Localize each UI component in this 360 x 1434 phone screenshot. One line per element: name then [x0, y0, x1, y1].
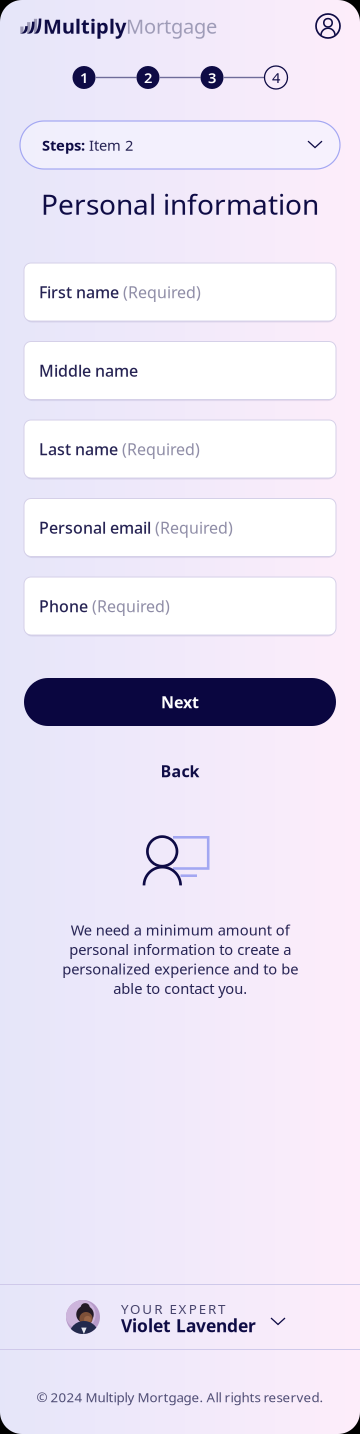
staticText: (Required) — [151, 517, 233, 538]
staticText: Violet Lavender — [121, 1314, 256, 1337]
staticText: Personal email — [39, 517, 151, 538]
staticText: (Required) — [118, 438, 200, 460]
staticText: Middle name — [39, 360, 138, 381]
button[interactable]: Last name — [24, 420, 336, 478]
staticText: Steps: — [42, 135, 85, 155]
button[interactable]: Personal email — [24, 498, 336, 556]
button[interactable]: Steps: — [20, 121, 340, 169]
staticText: 4 — [272, 68, 280, 87]
button[interactable]: Account — [316, 14, 340, 38]
button[interactable]: Next — [24, 678, 336, 726]
button[interactable]: YOUR EXPERT — [0, 1285, 360, 1349]
staticText: 2 — [144, 68, 152, 87]
staticText: YOUR EXPERT — [121, 1300, 225, 1318]
staticText: Mortgage — [126, 13, 217, 39]
button[interactable]: Phone — [24, 577, 336, 635]
staticText: Personal information — [41, 185, 319, 223]
staticText: Phone — [39, 595, 88, 617]
staticText: Back — [160, 760, 199, 782]
staticText: (Required) — [119, 281, 201, 303]
button[interactable]: Middle name — [24, 341, 336, 399]
staticText: First name — [39, 281, 119, 303]
staticText: Last name — [39, 438, 118, 460]
button[interactable]: First name — [24, 263, 336, 321]
staticText: Item 2 — [85, 135, 133, 155]
staticText: © 2024 Multiply Mortgage. All rights res… — [36, 1388, 323, 1406]
staticText: 1 — [80, 68, 88, 87]
button[interactable]: Back — [120, 758, 240, 784]
staticText: Multiply — [43, 13, 126, 39]
staticText: (Required) — [88, 595, 170, 617]
staticText: We need a minimum amount of personal inf… — [62, 920, 298, 998]
staticText: Next — [161, 691, 199, 713]
staticText: 3 — [208, 68, 216, 87]
